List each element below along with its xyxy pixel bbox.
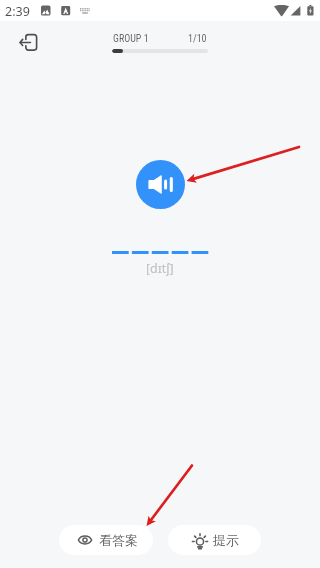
button[interactable]: 提示 — [168, 525, 261, 555]
button[interactable]: Play pronunciation — [136, 160, 185, 209]
staticText: [dɪtʃ] — [146, 260, 174, 277]
staticText: GROUP 1 — [113, 33, 149, 45]
staticText: 看答案 — [99, 532, 138, 548]
staticText: 2:39 — [5, 3, 30, 20]
button[interactable]: Exit — [14, 28, 40, 54]
button[interactable]: 看答案 — [59, 525, 153, 555]
staticText: 1/10 — [188, 33, 207, 45]
staticText: 提示 — [213, 532, 239, 548]
